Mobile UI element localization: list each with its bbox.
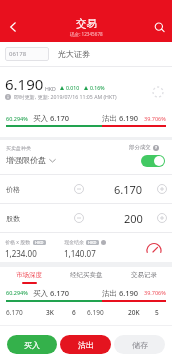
staticText: 39.706%: [144, 115, 166, 122]
staticText: 1,234.00: [5, 248, 37, 259]
staticText: 6.170: [6, 308, 23, 317]
staticText: 1,140.07: [64, 248, 96, 259]
button[interactable]: 沽出: [60, 335, 111, 354]
staticText: 增强限价盘: [6, 155, 46, 165]
staticText: 20K: [128, 308, 140, 317]
staticText: 价格 x 股数: [5, 239, 31, 246]
staticText: 价格: [6, 185, 20, 194]
button[interactable]: 经纪买卖盘: [58, 267, 115, 288]
staticText: 买入 6.170: [33, 113, 70, 123]
staticText: ?: [155, 145, 157, 151]
staticText: 买卖盘种类: [6, 145, 31, 151]
button[interactable]: 买入: [7, 335, 57, 354]
staticText: 3K: [46, 308, 54, 317]
staticText: 5: [155, 308, 159, 317]
staticText: HKD: [45, 85, 56, 92]
staticText: 现金结余: [64, 239, 84, 245]
staticText: 60.294%: [6, 289, 28, 296]
button[interactable]: 交易记录: [115, 267, 172, 288]
button[interactable]: Decrease 股数: [72, 211, 86, 225]
staticText: 部分成交: [129, 144, 151, 151]
staticText: HKD: [35, 240, 44, 245]
staticText: 06178: [9, 50, 27, 58]
staticText: 光大证券: [58, 49, 90, 59]
staticText: 买入 6.170: [33, 288, 70, 298]
staticText: 6.190: [87, 308, 104, 317]
staticText: 即时更新, 更新: 2019/07/16 11:05 AM (HKT): [14, 93, 117, 100]
button[interactable]: Back: [0, 12, 26, 42]
button[interactable]: Search: [146, 12, 172, 42]
staticText: 0.16%: [90, 84, 105, 91]
button[interactable]: 06178: [5, 42, 172, 66]
staticText: 6: [72, 308, 76, 317]
button[interactable]: Decrease 价格: [72, 182, 86, 196]
staticText: 6.170: [114, 182, 143, 197]
staticText: 买入: [24, 340, 40, 350]
staticText: 现金: 12345678: [70, 31, 103, 37]
staticText: 交易: [76, 17, 97, 30]
button[interactable]: 储存: [114, 335, 165, 354]
button[interactable]: Increase 股数: [155, 211, 169, 225]
staticText: 经纪买卖盘: [70, 271, 103, 279]
staticText: 交易记录: [131, 271, 157, 279]
staticText: 储存: [132, 340, 148, 350]
staticText: 市场深度: [16, 271, 42, 279]
button[interactable]: Partial fill toggle: [141, 155, 165, 167]
staticText: 沽出 6.190: [102, 288, 139, 298]
staticText: 沽出: [78, 340, 94, 350]
button[interactable]: Increase 价格: [155, 182, 169, 196]
staticText: 6.190: [5, 74, 44, 94]
staticText: 39.706%: [144, 289, 166, 296]
staticText: 股数: [6, 214, 20, 223]
button[interactable]: 市场深度: [0, 267, 58, 288]
staticText: HKD: [88, 240, 97, 245]
button[interactable]: 增强限价盘: [6, 155, 56, 165]
staticText: 0.010: [66, 84, 80, 91]
staticText: 60.294%: [6, 115, 28, 122]
staticText: 200: [124, 211, 143, 226]
staticText: 沽出 6.190: [102, 113, 139, 123]
